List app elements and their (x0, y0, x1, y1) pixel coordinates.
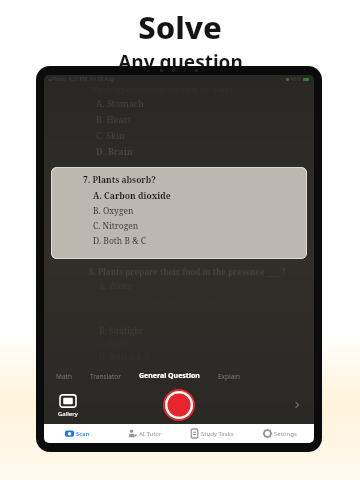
button[interactable]: Gallery (58, 393, 78, 418)
staticText: Math (56, 372, 72, 381)
staticText: Photo 4:35 PM Fri 18 Aug (52, 76, 114, 83)
staticText: Gallery (58, 410, 78, 418)
button[interactable]: Math (54, 371, 74, 382)
staticText: Study Tasks (201, 430, 234, 438)
staticText: Explain (218, 372, 241, 381)
staticText: B. Heart (96, 113, 131, 125)
staticText: Any question (118, 49, 243, 75)
button[interactable]: Scan (44, 424, 111, 443)
staticText: Solve (138, 6, 222, 48)
button[interactable]: General Question (137, 370, 202, 382)
staticText: D. Both B & C (93, 235, 146, 247)
button[interactable]: AI Tutor (111, 424, 178, 443)
staticText: Translator (90, 372, 121, 381)
staticText: 8. Plants prepare their food in the pres… (89, 266, 286, 277)
staticText: 46% (291, 76, 301, 83)
button[interactable]: Settings (246, 424, 314, 443)
staticText: B. Sunlight (99, 325, 143, 336)
staticText: Scan (76, 430, 90, 438)
staticText: AI Tutor (139, 430, 162, 438)
button[interactable]: Capture (163, 389, 195, 421)
staticText: B. Oxygen (93, 205, 134, 217)
staticText: Settings (274, 430, 297, 438)
staticText: A. Carbon dioxide (93, 190, 171, 202)
button[interactable]: Explain (216, 371, 243, 382)
staticText: C. Nitrogen (93, 220, 139, 232)
staticText: A. Water (99, 280, 132, 291)
other: More (294, 402, 300, 408)
staticText: D. Brain (96, 145, 133, 157)
button[interactable]: Translator (88, 371, 123, 382)
button[interactable]: 7. Plants absorb? (51, 167, 307, 259)
staticText: 7. Plants absorb? (83, 174, 156, 186)
staticText: General Question (139, 371, 200, 381)
staticText: A. Stomach (96, 97, 144, 109)
button[interactable]: Study Tasks (178, 424, 246, 443)
staticText: C. Skin (96, 129, 125, 141)
